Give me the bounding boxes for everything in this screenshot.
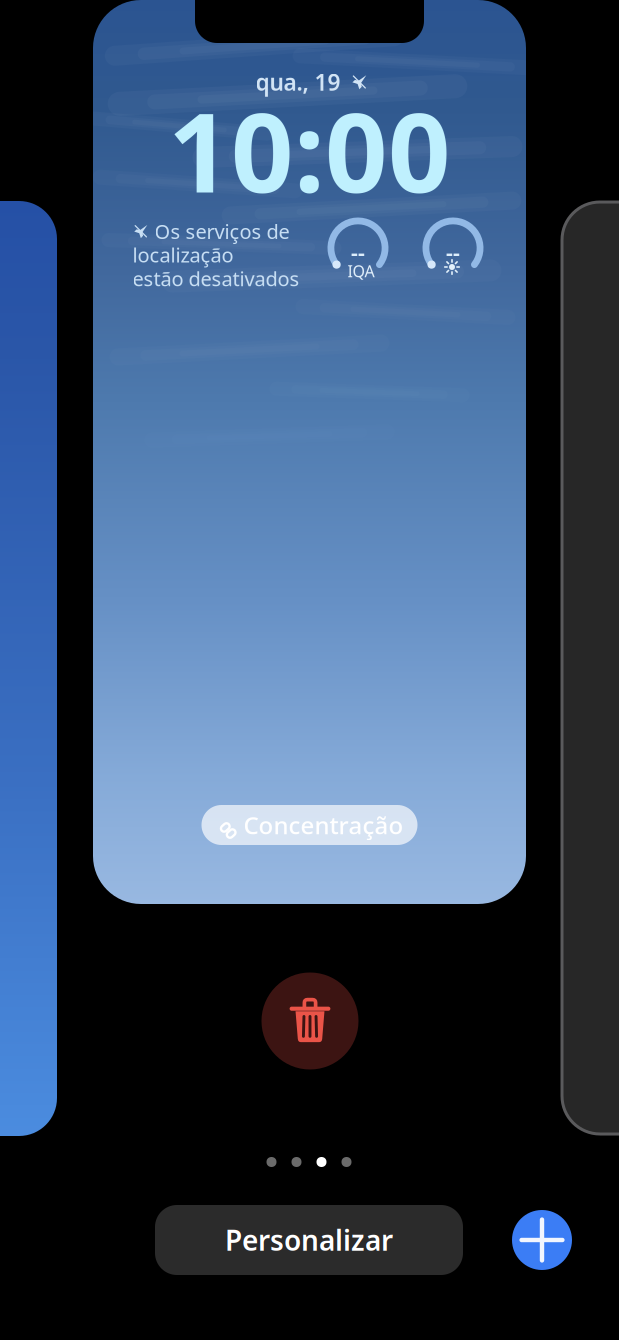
- button[interactable]: Personalizar: [155, 1205, 463, 1275]
- staticText: --: [351, 238, 365, 266]
- staticText: Concentração: [243, 809, 403, 841]
- button[interactable]: Adicionar tela de bloqueio: [562, 202, 619, 1134]
- staticText: IQA: [347, 260, 374, 282]
- staticText: localização: [132, 242, 233, 268]
- staticText: estão desativados: [132, 265, 299, 292]
- staticText: Os serviços de: [154, 218, 289, 245]
- button[interactable]: Pré-visualização da tela de bloqueio: [93, 0, 526, 904]
- button[interactable]: Adicionar: [512, 1210, 572, 1270]
- staticText: qua., 19: [255, 67, 340, 97]
- button[interactable]: Apagar tela de bloqueio: [261, 972, 358, 1069]
- staticText: Personalizar: [225, 1221, 393, 1259]
- button[interactable]: Tela de bloqueio anterior: [0, 201, 57, 1136]
- staticText: 10:00: [168, 77, 451, 223]
- staticText: --: [446, 238, 460, 266]
